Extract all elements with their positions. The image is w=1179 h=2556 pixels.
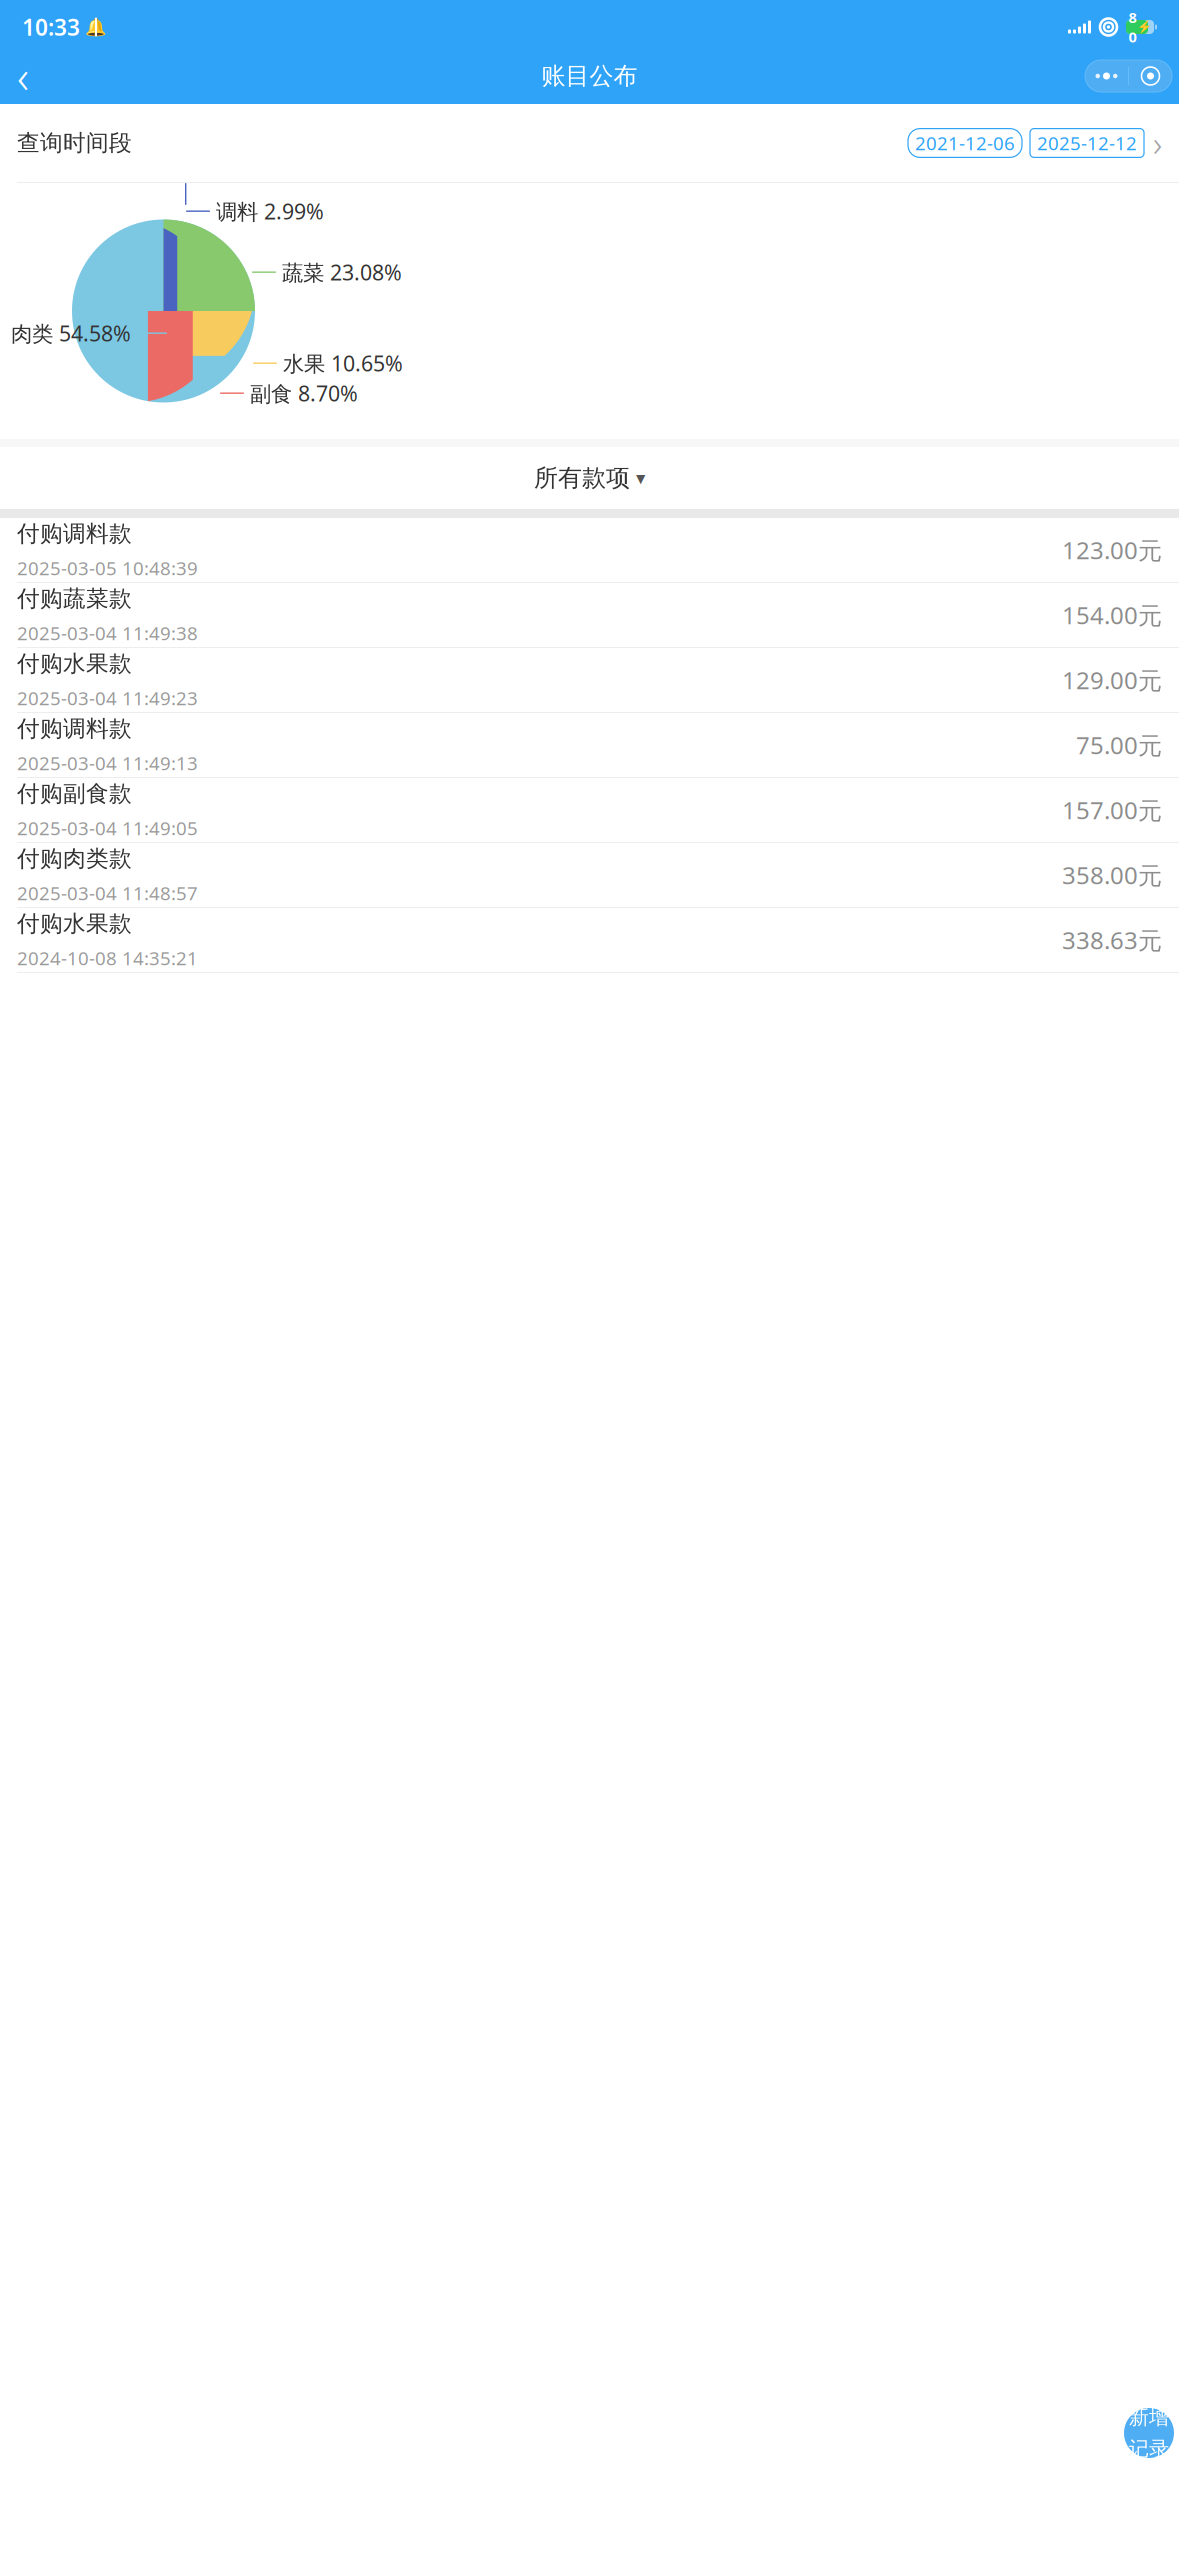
- button[interactable]: Close: [1129, 60, 1172, 92]
- button[interactable]: 2025-12-12: [1030, 129, 1144, 157]
- staticText: 2025-03-04 11:49:13: [17, 750, 198, 775]
- staticText: 付购水果款: [17, 650, 132, 677]
- staticText: ⚡: [1136, 20, 1151, 34]
- staticText: 付购调料款: [17, 715, 132, 742]
- staticText: 80: [1128, 7, 1136, 46]
- staticText: 所有款项: [534, 463, 630, 493]
- staticText: 账目公布: [541, 61, 637, 91]
- staticText: 付购副食款: [17, 780, 132, 807]
- staticText: 129.00元: [1062, 664, 1162, 696]
- staticText: 副食 8.70%: [250, 379, 358, 407]
- staticText: 记录: [1129, 2436, 1169, 2461]
- staticText: 2021-12-06: [915, 131, 1015, 155]
- staticText: 358.00元: [1062, 859, 1162, 891]
- staticText: 付购水果款: [17, 910, 132, 937]
- staticText: 新增: [1129, 2405, 1169, 2429]
- button[interactable]: More: [1085, 60, 1128, 92]
- staticText: 2025-03-04 11:49:23: [17, 685, 198, 710]
- button[interactable]: 付购副食款: [0, 778, 1179, 843]
- button[interactable]: 付购蔬菜款: [0, 583, 1179, 648]
- staticText: 2025-12-12: [1037, 131, 1137, 155]
- staticText: 查询时间段: [17, 129, 132, 157]
- staticText: 154.00元: [1062, 599, 1162, 631]
- staticText: ‹: [17, 46, 29, 106]
- button[interactable]: 新增: [1124, 2408, 1174, 2458]
- staticText: ▾: [636, 467, 645, 489]
- staticText: 123.00元: [1062, 534, 1162, 566]
- staticText: 调料 2.99%: [216, 197, 324, 225]
- button[interactable]: Back: [0, 54, 46, 98]
- staticText: 🔔: [85, 17, 107, 37]
- staticText: 肉类 54.58%: [11, 319, 131, 347]
- staticText: 水果 10.65%: [283, 349, 403, 377]
- button[interactable]: 付购肉类款: [0, 843, 1179, 908]
- staticText: 2024-10-08 14:35:21: [17, 945, 198, 970]
- button[interactable]: 付购调料款: [0, 713, 1179, 778]
- staticText: ›: [1153, 120, 1162, 166]
- button[interactable]: 付购调料款: [0, 518, 1179, 583]
- button[interactable]: 所有款项: [0, 447, 1179, 509]
- button[interactable]: 2021-12-06: [908, 129, 1022, 157]
- staticText: 10:33: [22, 12, 80, 42]
- staticText: 付购蔬菜款: [17, 585, 132, 612]
- staticText: 2025-03-04 11:48:57: [17, 880, 198, 905]
- staticText: 蔬菜 23.08%: [282, 258, 402, 286]
- staticText: 2025-03-05 10:48:39: [17, 555, 198, 580]
- staticText: 157.00元: [1062, 794, 1162, 826]
- staticText: 付购肉类款: [17, 845, 132, 872]
- staticText: 2025-03-04 11:49:38: [17, 620, 198, 645]
- button[interactable]: 付购水果款: [0, 908, 1179, 973]
- staticText: 338.63元: [1062, 924, 1162, 956]
- staticText: 2025-03-04 11:49:05: [17, 815, 198, 840]
- staticText: 付购调料款: [17, 520, 132, 547]
- staticText: 75.00元: [1076, 729, 1162, 761]
- button[interactable]: 付购水果款: [0, 648, 1179, 713]
